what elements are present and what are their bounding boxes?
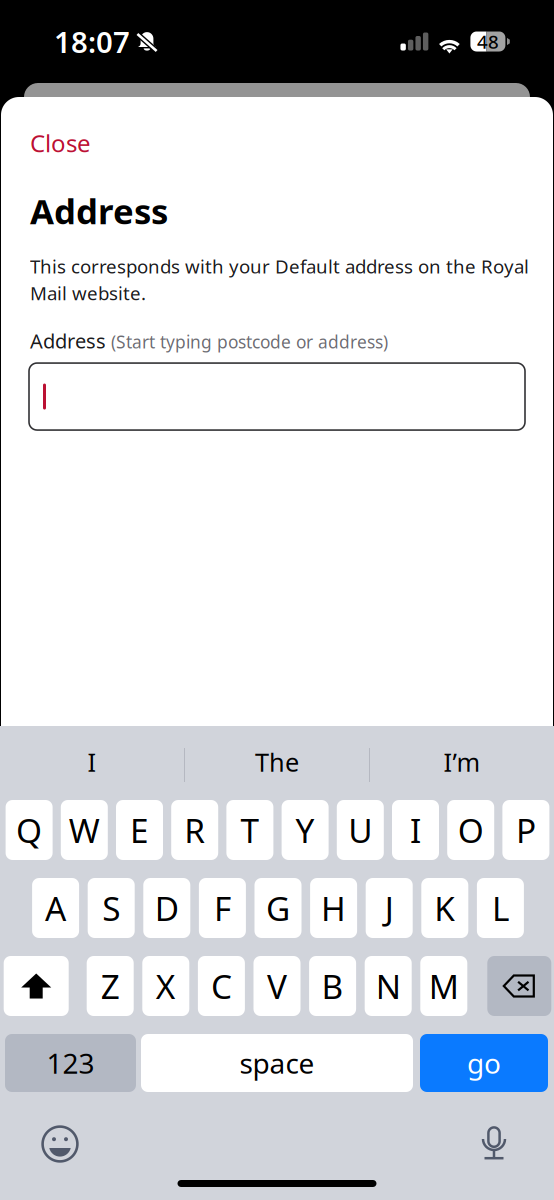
staticText: L — [492, 886, 509, 930]
staticText: R — [184, 808, 205, 852]
button[interactable]: G — [254, 878, 301, 938]
button[interactable]: B — [309, 956, 356, 1016]
button[interactable]: N — [365, 956, 412, 1016]
button[interactable]: I — [392, 800, 439, 860]
staticText: (Start typing postcode or address) — [111, 330, 388, 353]
button[interactable]: H — [310, 878, 357, 938]
staticText: W — [69, 808, 100, 852]
staticText: H — [321, 886, 346, 930]
button[interactable]: T — [226, 800, 273, 860]
staticText: This corresponds with your Default addre… — [30, 254, 529, 279]
button[interactable]: J — [366, 878, 413, 938]
staticText: I — [410, 808, 421, 852]
button[interactable]: L — [477, 878, 524, 938]
button[interactable]: Emoji — [38, 1122, 82, 1166]
staticText: U — [348, 808, 372, 852]
button[interactable]: U — [337, 800, 384, 860]
staticText: Y — [296, 808, 315, 852]
button[interactable]: M — [420, 956, 467, 1016]
button[interactable]: K — [421, 878, 468, 938]
button[interactable]: space — [141, 1034, 413, 1092]
button[interactable]: R — [171, 800, 218, 860]
staticText: go — [467, 1044, 501, 1082]
button[interactable]: A — [32, 878, 79, 938]
button[interactable]: Shift — [4, 956, 69, 1016]
button[interactable]: V — [253, 956, 300, 1016]
staticText: Address — [30, 327, 106, 354]
button[interactable]: I — [0, 726, 184, 798]
button[interactable]: D — [143, 878, 190, 938]
staticText: G — [266, 886, 290, 930]
staticText: O — [458, 808, 484, 852]
button[interactable]: Delete — [487, 956, 551, 1016]
button[interactable]: P — [502, 800, 549, 860]
button[interactable]: E — [116, 800, 163, 860]
button[interactable]: I’m — [370, 726, 554, 798]
staticText: The — [255, 745, 299, 779]
staticText: Q — [16, 808, 42, 852]
button[interactable]: Q — [6, 800, 53, 860]
staticText: M — [429, 964, 459, 1008]
staticText: D — [155, 886, 179, 930]
button[interactable]: S — [88, 878, 135, 938]
staticText: C — [211, 964, 232, 1008]
button[interactable]: F — [199, 878, 246, 938]
staticText: Close — [30, 127, 91, 159]
staticText: Address — [30, 188, 168, 234]
staticText: N — [376, 964, 401, 1008]
staticText: P — [516, 808, 536, 852]
button[interactable]: O — [447, 800, 494, 860]
staticText: Z — [101, 964, 120, 1008]
button[interactable]: C — [198, 956, 245, 1016]
button[interactable]: Dictate — [472, 1122, 516, 1166]
button[interactable]: go — [420, 1034, 548, 1092]
staticText: T — [240, 808, 259, 852]
staticText: I’m — [443, 745, 480, 779]
staticText: E — [130, 808, 149, 852]
staticText: Mail website. — [30, 281, 146, 305]
staticText: 123 — [46, 1044, 94, 1082]
staticText: J — [385, 886, 394, 930]
button[interactable]: Z — [87, 956, 134, 1016]
staticText: F — [214, 886, 231, 930]
staticText: S — [102, 886, 120, 930]
button[interactable]: W — [61, 800, 108, 860]
staticText: X — [156, 964, 176, 1008]
button[interactable]: The — [185, 726, 369, 798]
staticText: space — [239, 1044, 314, 1082]
staticText: B — [322, 964, 344, 1008]
staticText: A — [45, 886, 66, 930]
button[interactable] — [29, 363, 525, 430]
button[interactable]: Close — [0, 120, 121, 166]
staticText: 18:07 — [54, 22, 130, 61]
button[interactable]: 123 — [5, 1034, 136, 1092]
staticText: K — [434, 886, 455, 930]
staticText: V — [267, 964, 287, 1008]
button[interactable]: Y — [282, 800, 329, 860]
button[interactable]: X — [142, 956, 189, 1016]
staticText: I — [87, 745, 96, 779]
staticText: 48 — [477, 29, 499, 54]
